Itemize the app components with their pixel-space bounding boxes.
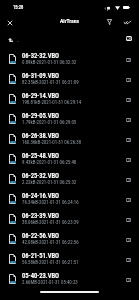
staticText: 2.66MB-2021-01-31 05:40:23 xyxy=(22,279,78,285)
staticText: 15:28 xyxy=(13,5,24,10)
button[interactable]: Storage device xyxy=(122,73,135,86)
staticText: 06-31-09.VBO xyxy=(22,72,60,80)
button[interactable]: .. xyxy=(0,32,139,47)
button[interactable]: 06-31-09.VBO xyxy=(0,67,139,87)
button[interactable]: Storage device xyxy=(122,253,135,266)
staticText: 38.06kB-2021-01-31 06:23:39 xyxy=(22,219,79,225)
staticText: 06-29-14.VBO xyxy=(22,92,60,100)
staticText: AirTrans xyxy=(0,18,139,25)
staticText: 1.79kB-2021-01-31 06:29:05 xyxy=(22,119,77,125)
button[interactable]: 06-32-32.VBO xyxy=(0,47,139,67)
staticText: 56.58kB-2021-01-31 06:21:51 xyxy=(22,259,79,265)
staticText: 42.08kB-2021-01-31 06:22:56 xyxy=(22,239,79,245)
button[interactable]: Storage device xyxy=(122,133,135,146)
button[interactable]: Storage device xyxy=(122,193,135,206)
button[interactable]: Filter xyxy=(100,13,118,31)
button[interactable]: 06-25-32.VBO xyxy=(0,167,139,187)
staticText: 06-24-16.VBO xyxy=(22,192,60,200)
button[interactable]: 06-29-14.VBO xyxy=(0,87,139,107)
staticText: 06-25-32.VBO xyxy=(22,172,60,180)
button[interactable]: Select all xyxy=(118,13,136,31)
staticText: .. xyxy=(17,37,20,43)
staticText: 198.81kB-2021-01-31 06:29:14 xyxy=(22,99,82,105)
button[interactable]: 06-23-39.VBO xyxy=(0,207,139,227)
button[interactable]: Close xyxy=(1,14,19,32)
button[interactable]: Storage device xyxy=(122,153,135,166)
staticText: 76.34kB-2021-01-31 06:24:16 xyxy=(22,199,79,205)
button[interactable]: Storage device xyxy=(122,173,135,186)
button[interactable]: Storage device xyxy=(122,53,135,66)
staticText: 06-29-05.VBO xyxy=(22,112,60,120)
staticText: 06-25-48.VBO xyxy=(22,152,60,160)
button[interactable]: Storage device xyxy=(122,32,135,45)
button[interactable]: 06-29-05.VBO xyxy=(0,107,139,127)
button[interactable]: Storage device xyxy=(122,273,135,286)
button[interactable]: 06-22-56.VBO xyxy=(0,227,139,247)
button[interactable]: 06-26-38.VBO xyxy=(0,127,139,147)
staticText: 9.43kB-2021-01-31 06:25:48 xyxy=(22,159,77,165)
button[interactable]: Storage device xyxy=(122,113,135,126)
staticText: 82.35kB-2021-01-31 06:31:09 xyxy=(22,79,79,85)
staticText: 05-40-23.VBO xyxy=(22,272,60,280)
button[interactable]: 06-21-51.VBO xyxy=(0,247,139,267)
button[interactable]: Storage device xyxy=(122,233,135,246)
staticText: 0.89kB-2021-01-31 06:32:32 xyxy=(22,59,77,65)
button[interactable]: 06-25-48.VBO xyxy=(0,147,139,167)
staticText: 06-23-39.VBO xyxy=(22,212,60,220)
button[interactable]: 06-24-16.VBO xyxy=(0,187,139,207)
button[interactable]: 05-40-23.VBO xyxy=(0,267,139,287)
staticText: 06-32-32.VBO xyxy=(22,52,60,60)
staticText: 06-22-56.VBO xyxy=(22,232,60,240)
staticText: 06-21-51.VBO xyxy=(22,252,60,260)
button[interactable]: Storage device xyxy=(122,213,135,226)
staticText: 06-26-38.VBO xyxy=(22,132,60,140)
button[interactable]: Storage device xyxy=(122,93,135,106)
staticText: 160.36kB-2021-01-31 06:26:38 xyxy=(22,139,82,145)
staticText: 2.22kB-2021-01-31 06:25:32 xyxy=(22,179,77,185)
